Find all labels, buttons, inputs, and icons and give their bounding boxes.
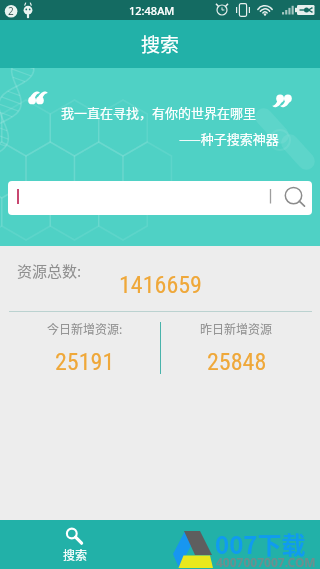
button[interactable]: 昨日新增资源 <box>157 320 316 376</box>
staticText: 12:48AM <box>129 3 175 18</box>
staticText: 4007007007.COM <box>216 554 316 569</box>
staticText: 2 <box>8 4 14 18</box>
staticText: 昨日新增资源 <box>200 320 273 337</box>
staticText: 搜索 <box>63 546 88 563</box>
staticText: 25848 <box>207 348 267 376</box>
staticText: 007下载 <box>215 526 306 561</box>
staticText: 25191 <box>55 348 115 376</box>
staticText: 我一直在寻找，有你的世界在哪里 <box>61 103 257 122</box>
staticText: 资源总数: <box>17 260 82 282</box>
staticText: 今日新增资源: <box>47 320 123 337</box>
button[interactable]: 今日新增资源: <box>5 320 164 376</box>
staticText: ——种子搜索神器 <box>179 129 279 148</box>
staticText: 搜索 <box>141 30 180 58</box>
button[interactable] <box>8 181 312 215</box>
button[interactable]: 搜索 <box>0 520 145 569</box>
staticText: 1416659 <box>119 271 202 299</box>
